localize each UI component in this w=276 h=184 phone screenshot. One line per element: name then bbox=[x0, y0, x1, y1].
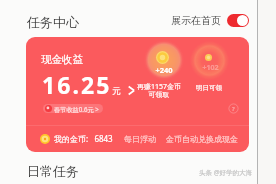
staticText: 明日可领 bbox=[187, 84, 231, 92]
staticText: 头条 @好学的大海 bbox=[199, 168, 253, 177]
staticText: +240 bbox=[155, 65, 173, 75]
button[interactable]: 展示在首页 bbox=[171, 13, 249, 27]
staticText: 16.25 bbox=[42, 69, 112, 100]
staticText: 日常任务 bbox=[27, 163, 79, 179]
button[interactable]: 再赚1157金币 可领取 bbox=[133, 82, 185, 99]
button[interactable]: 任务中心 bbox=[27, 14, 79, 30]
button[interactable]: 现金收益 bbox=[26, 37, 249, 152]
button[interactable]: 春节收益0.6元 > bbox=[45, 104, 99, 113]
staticText: 现金收益 bbox=[41, 53, 83, 66]
button[interactable]: Help bbox=[227, 102, 240, 115]
staticText: 春节收益0.6元 > bbox=[54, 105, 99, 113]
staticText: 每日浮动 bbox=[124, 134, 156, 144]
button[interactable]: 明日可领 bbox=[187, 84, 231, 92]
staticText: 展示在首页 bbox=[171, 14, 221, 27]
staticText: 金币自动兑换成现金 bbox=[166, 134, 238, 144]
staticText: +102 bbox=[202, 63, 219, 73]
button[interactable] bbox=[144, 40, 184, 80]
staticText: ? bbox=[232, 105, 235, 113]
button[interactable]: 我的金币: 6843 bbox=[40, 125, 249, 152]
staticText: 再赚1157金币 可领取 bbox=[133, 82, 185, 99]
staticText: 我的金币: 6843 bbox=[54, 133, 113, 144]
staticText: 任务中心 bbox=[27, 14, 79, 30]
button[interactable]: 日常任务 bbox=[27, 163, 79, 179]
staticText: 元 bbox=[112, 86, 121, 97]
button[interactable] bbox=[190, 41, 229, 80]
